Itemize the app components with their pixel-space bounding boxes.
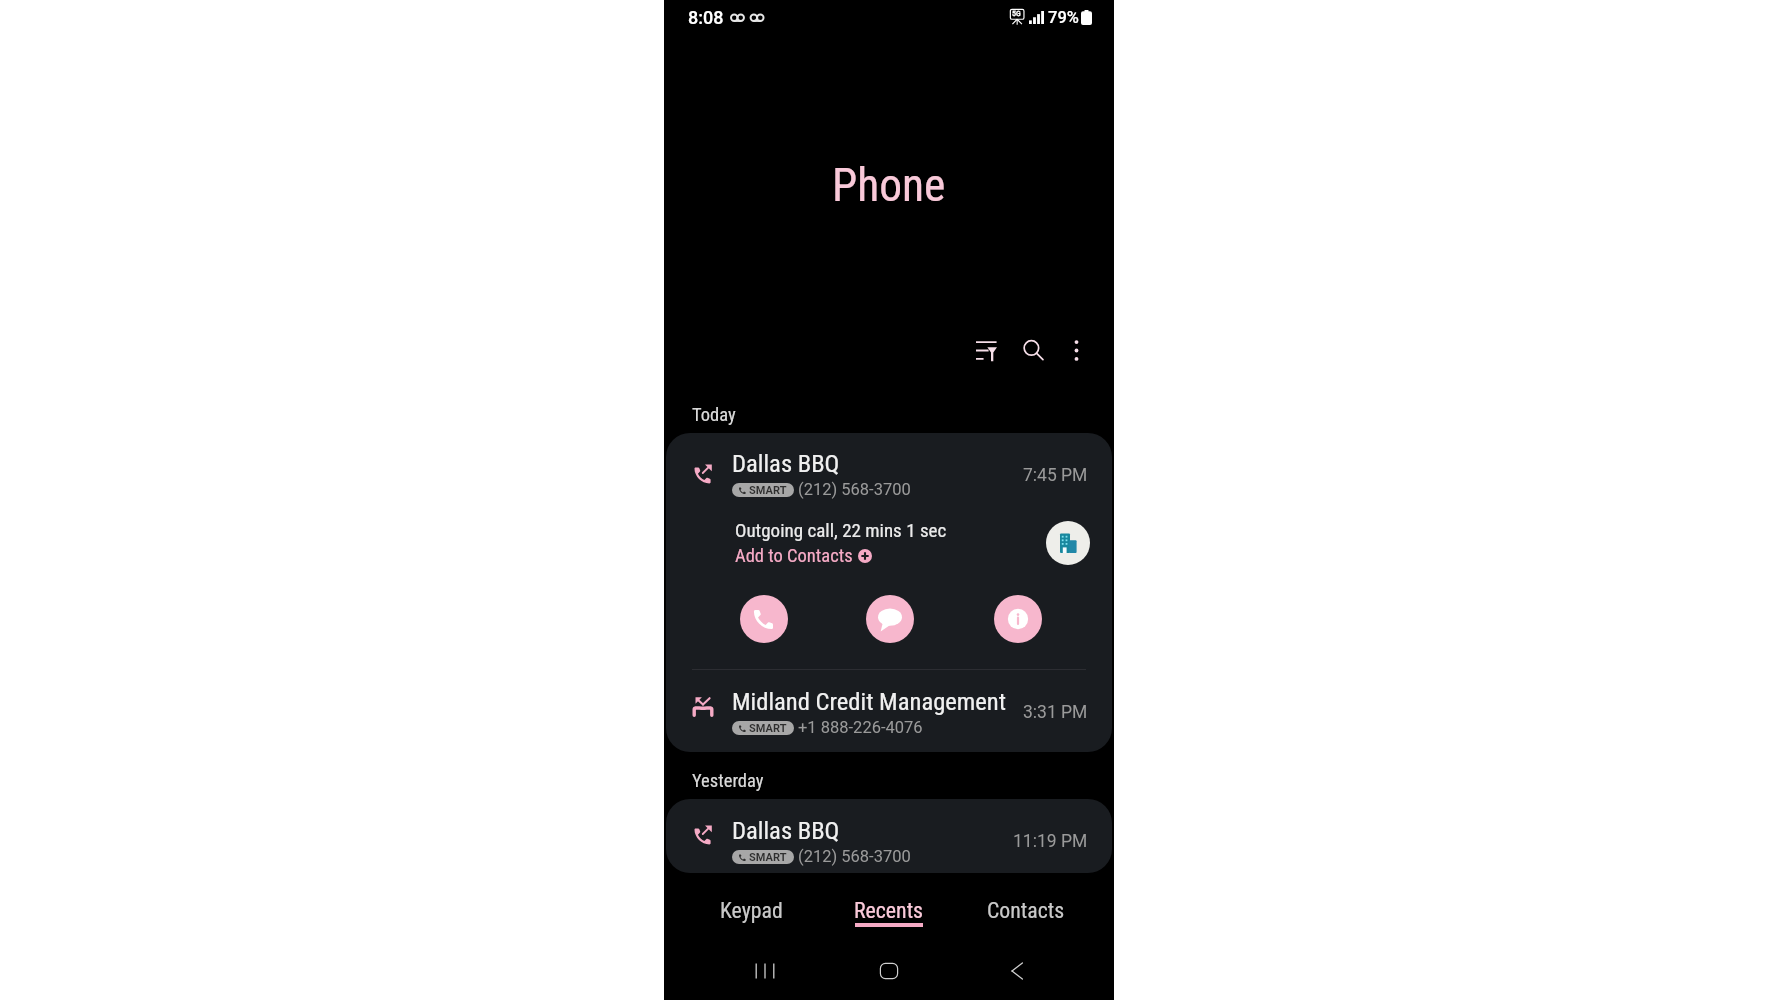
staticText: Today <box>692 404 736 426</box>
button[interactable]: Dallas BBQ <box>666 433 1112 669</box>
staticText: 7:45 PM <box>1023 465 1088 486</box>
button[interactable]: More options <box>1053 327 1099 373</box>
staticText: Yesterday <box>692 770 764 792</box>
staticText: SMART <box>749 722 787 735</box>
button[interactable]: Midland Credit Management <box>666 670 1112 752</box>
staticText: 8:08 <box>688 7 724 28</box>
staticText: SMART <box>749 851 787 864</box>
staticText: +1 888-226-4076 <box>798 718 923 737</box>
button[interactable]: Recents <box>829 890 949 938</box>
staticText: Recents <box>854 898 924 924</box>
staticText: Contacts <box>987 898 1065 924</box>
button[interactable]: Sort <box>963 327 1009 373</box>
staticText: Keypad <box>720 898 783 924</box>
staticText: 79% <box>1048 8 1079 27</box>
staticText: Outgoing call, 22 mins 1 sec <box>735 519 947 541</box>
button[interactable]: Call <box>740 595 788 643</box>
button[interactable]: Add to Contacts <box>735 545 872 567</box>
staticText: Dallas BBQ <box>732 816 840 845</box>
button[interactable]: Details <box>994 595 1042 643</box>
staticText: (212) 568-3700 <box>798 847 911 866</box>
staticText: Add to Contacts <box>735 545 853 567</box>
button[interactable]: Recent apps <box>741 947 789 995</box>
button[interactable]: Keypad <box>691 890 811 938</box>
staticText: 11:19 PM <box>1013 831 1088 852</box>
staticText: Midland Credit Management <box>732 687 1007 716</box>
button[interactable]: Contacts <box>966 890 1086 938</box>
staticText: Dallas BBQ <box>732 449 840 478</box>
button[interactable]: Contact photo <box>1046 521 1090 565</box>
button[interactable]: Search <box>1010 327 1056 373</box>
button[interactable]: Dallas BBQ <box>666 799 1112 873</box>
staticText: 3:31 PM <box>1023 702 1088 723</box>
button[interactable]: Message <box>866 595 914 643</box>
staticText: SMART <box>749 484 787 497</box>
button[interactable]: Back <box>996 947 1044 995</box>
staticText: Phone <box>832 159 946 212</box>
button[interactable]: Home <box>865 947 913 995</box>
staticText: 5G <box>1012 9 1021 18</box>
staticText: (212) 568-3700 <box>798 480 911 499</box>
